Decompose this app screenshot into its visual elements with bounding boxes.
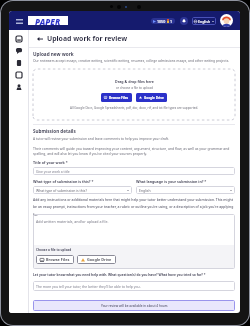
staticText: Google Drive [144, 96, 164, 100]
staticText: Add written materials, and/or upload a f… [36, 219, 109, 224]
staticText: Browse Files [109, 96, 129, 100]
staticText: Drag & drop files here [115, 79, 154, 84]
staticText: PAPER [35, 16, 61, 25]
staticText: What language is your submission in? * [136, 179, 207, 184]
button[interactable]: Messages [9, 45, 28, 57]
staticText: Choose a file to upload [36, 248, 72, 252]
staticText: Upload work for review [47, 34, 128, 43]
staticText: The more you tell your tutor, the better… [36, 284, 141, 289]
button[interactable]: English [139, 186, 232, 194]
staticText: Give your work a title [36, 169, 70, 174]
button[interactable]: Browse Files [40, 255, 70, 264]
staticText: Browse Files [46, 257, 70, 262]
button[interactable]: Back [36, 35, 43, 42]
button[interactable]: Google Drive [139, 93, 164, 102]
button[interactable]: Google Drive [81, 255, 112, 264]
button[interactable]: Menu [14, 16, 24, 26]
staticText: What type of submission is this? [36, 188, 127, 193]
staticText: Upload new work [33, 51, 74, 57]
staticText: Title of your work * [33, 160, 68, 165]
button[interactable]: Notifications [180, 17, 188, 25]
button[interactable]: The more you tell your tutor, the better… [36, 281, 232, 291]
button[interactable]: What type of submission is this? [36, 186, 129, 194]
staticText: Their comments will guide you toward imp… [33, 146, 235, 156]
staticText: Google Drive [87, 257, 112, 262]
staticText: or choose a file to upload [116, 86, 153, 90]
button[interactable]: Browse Files [104, 93, 129, 102]
staticText: Let your tutor know what you need help w… [33, 273, 206, 277]
button[interactable]: PAPER [28, 16, 68, 25]
button[interactable]: Account [9, 81, 28, 93]
staticText: A tutor will review your submission and … [33, 136, 169, 140]
staticText: What type of submission is this? * [33, 179, 94, 184]
staticText: English [198, 19, 211, 24]
staticText: English [139, 188, 230, 193]
button[interactable]: Your review will be available in about 4… [33, 300, 235, 311]
staticText: Your review will be available in about 4… [101, 304, 168, 308]
staticText: All Google Docs, Google Spreadsheets, pd… [70, 106, 199, 110]
staticText: Our reviewers accept essays, creative wr… [33, 58, 230, 62]
staticText: 1050 [157, 19, 166, 24]
button[interactable]: Profile [220, 14, 233, 27]
button[interactable]: Give your work a title [36, 167, 232, 175]
button[interactable]: Documents [9, 57, 28, 69]
button[interactable]: Add written materials, and/or upload a f… [33, 214, 235, 269]
button[interactable]: Home [9, 33, 28, 45]
button[interactable]: English [194, 17, 214, 25]
button[interactable]: Calendar [9, 69, 28, 81]
staticText: Add any instructions or additional mater… [33, 197, 235, 217]
button[interactable]: 1050 [153, 18, 173, 24]
staticText: 1 [170, 19, 173, 24]
staticText: Submission details [33, 128, 76, 134]
